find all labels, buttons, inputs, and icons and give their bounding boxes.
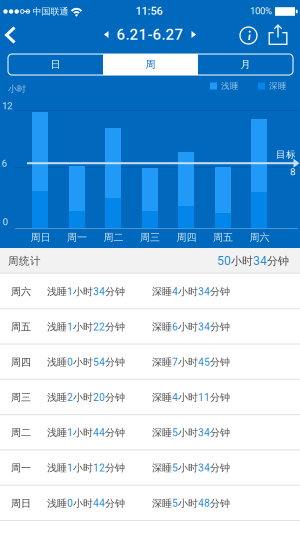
staticText: 1 [67, 427, 73, 439]
staticText: 分钟 [210, 497, 230, 510]
button[interactable]: 月 [198, 54, 293, 75]
staticText: 12 [93, 462, 105, 474]
staticText: 分钟 [267, 254, 289, 268]
staticText: 34 [198, 321, 210, 333]
staticText: 分钟 [210, 391, 230, 404]
staticText: 12 [2, 100, 12, 112]
staticText: 深睡 [152, 497, 172, 510]
staticText: 周统计 [8, 254, 41, 268]
staticText: 周一 [11, 462, 31, 474]
staticText: 小时 [73, 356, 93, 368]
staticText: 分钟 [105, 321, 125, 333]
staticText: 浅睡 [47, 426, 67, 439]
staticText: 34 [93, 286, 105, 298]
staticText: 44 [93, 497, 105, 509]
staticText: 1 [67, 321, 73, 333]
staticText: 2 [67, 391, 73, 403]
staticText: 小时 [73, 497, 93, 510]
staticText: 月 [240, 58, 250, 71]
staticText: 中国联通 [32, 6, 68, 17]
staticText: 小时 [178, 497, 198, 510]
button[interactable]: Share [267, 24, 288, 46]
button[interactable]: Back [0, 23, 24, 47]
staticText: 45 [198, 356, 210, 368]
staticText: 周五 [11, 321, 31, 333]
staticText: 6.21-6.27 [116, 26, 183, 43]
staticText: 浅睡 [47, 391, 67, 404]
staticText: 周二 [11, 426, 31, 439]
staticText: 分钟 [105, 391, 125, 404]
button[interactable]: 周 [103, 54, 198, 75]
staticText: 浅睡 [47, 321, 67, 333]
staticText: 小时 [178, 462, 198, 474]
staticText: 周三 [11, 391, 31, 404]
staticText: 周三 [140, 231, 160, 244]
staticText: 浅睡 [221, 81, 239, 91]
staticText: 周 [145, 58, 155, 71]
staticText: 小时 [73, 391, 93, 404]
staticText: 周日 [30, 231, 50, 244]
staticText: 11:56 [135, 5, 162, 17]
staticText: 6 [172, 321, 178, 333]
staticText: 周六 [11, 285, 31, 298]
staticText: 1 [67, 462, 73, 474]
staticText: 周四 [11, 356, 31, 368]
staticText: 7 [172, 356, 178, 368]
staticText: 小时 [73, 321, 93, 333]
button[interactable]: Select week [103, 26, 196, 43]
staticText: 深睡 [152, 462, 172, 474]
staticText: 周六 [249, 231, 269, 244]
staticText: 目标 [276, 148, 296, 160]
button[interactable]: 日 [8, 54, 103, 75]
staticText: 深睡 [269, 81, 287, 91]
staticText: 小时 [178, 356, 198, 368]
staticText: 小时 [73, 285, 93, 298]
staticText: 11 [198, 391, 210, 403]
staticText: 0 [67, 356, 73, 368]
staticText: 50 [217, 254, 231, 268]
staticText: 分钟 [210, 321, 230, 333]
staticText: 分钟 [105, 285, 125, 298]
staticText: 深睡 [152, 356, 172, 368]
staticText: 分钟 [210, 356, 230, 368]
staticText: 6 [1, 158, 6, 169]
staticText: 分钟 [105, 497, 125, 510]
staticText: 分钟 [210, 462, 230, 474]
staticText: 分钟 [210, 285, 230, 298]
staticText: 分钟 [210, 426, 230, 439]
staticText: 34 [198, 462, 210, 474]
staticText: 44 [93, 427, 105, 439]
button[interactable]: Info [239, 26, 258, 45]
staticText: 34 [198, 427, 210, 439]
staticText: 日 [50, 58, 60, 71]
staticText: 小时 [178, 285, 198, 298]
staticText: 4 [172, 286, 178, 298]
staticText: 小时 [73, 426, 93, 439]
staticText: 小时 [178, 426, 198, 439]
staticText: 浅睡 [47, 462, 67, 474]
staticText: 48 [198, 497, 210, 509]
staticText: 深睡 [152, 391, 172, 404]
staticText: 分钟 [105, 426, 125, 439]
staticText: 22 [93, 321, 105, 333]
staticText: 周四 [176, 231, 196, 244]
staticText: 深睡 [152, 321, 172, 333]
staticText: 分钟 [105, 462, 125, 474]
staticText: 34 [253, 254, 267, 268]
staticText: 4 [172, 391, 178, 403]
staticText: 1 [67, 286, 73, 298]
staticText: 100% [250, 5, 272, 16]
staticText: 0 [67, 497, 73, 509]
staticText: 浅睡 [47, 497, 67, 510]
staticText: 小时 [178, 391, 198, 404]
staticText: 5 [172, 462, 178, 474]
staticText: 深睡 [152, 285, 172, 298]
staticText: 深睡 [152, 426, 172, 439]
staticText: 54 [93, 356, 105, 368]
staticText: 小时 [73, 462, 93, 474]
staticText: 小时 [231, 254, 253, 268]
staticText: 34 [198, 286, 210, 298]
staticText: 周五 [213, 231, 233, 244]
staticText: 周一 [67, 231, 87, 244]
staticText: 5 [172, 427, 178, 439]
